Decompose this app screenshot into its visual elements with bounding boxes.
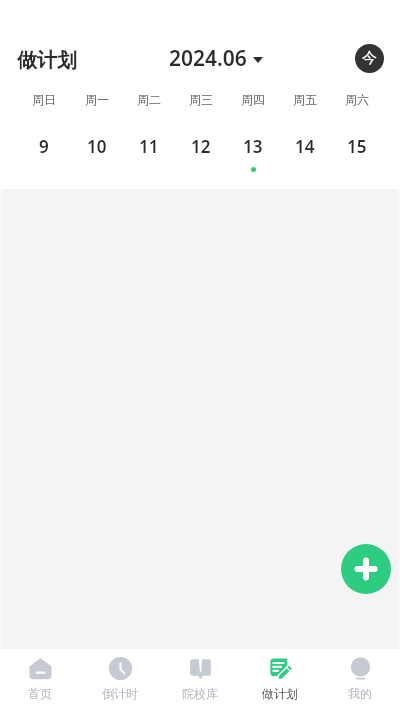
staticText: 院校库 — [182, 686, 218, 701]
staticText: 周一 — [85, 92, 109, 107]
button[interactable]: 15 — [331, 135, 383, 172]
button[interactable]: 做计划 — [17, 48, 77, 73]
staticText: 今 — [362, 49, 377, 68]
button[interactable]: Add plan — [341, 544, 391, 594]
staticText: 周三 — [189, 92, 213, 107]
staticText: 15 — [347, 135, 367, 158]
staticText: 周日 — [32, 92, 56, 107]
staticText: 10 — [87, 135, 107, 158]
button[interactable]: 做计划 — [240, 649, 320, 710]
staticText: 12 — [191, 135, 211, 158]
staticText: 倒计时 — [102, 686, 138, 701]
button[interactable]: 2024.06 — [169, 44, 263, 73]
staticText: 周二 — [137, 92, 161, 107]
button[interactable]: Today — [355, 44, 384, 73]
staticText: 做计划 — [262, 686, 298, 701]
button[interactable]: 10 — [70, 135, 123, 172]
staticText: 周五 — [293, 92, 317, 107]
staticText: 13 — [243, 135, 263, 158]
staticText: 2024.06 — [169, 44, 247, 73]
button[interactable]: 14 — [279, 135, 331, 172]
button[interactable]: 院校库 — [160, 649, 240, 710]
button[interactable]: 11 — [123, 135, 175, 172]
staticText: 周六 — [345, 92, 369, 107]
staticText: 9 — [39, 135, 49, 158]
staticText: 11 — [139, 135, 159, 158]
staticText: 首页 — [28, 686, 52, 701]
button[interactable]: 我的 — [320, 649, 400, 710]
staticText: 周四 — [241, 92, 265, 107]
staticText: 14 — [295, 135, 315, 158]
button[interactable]: 13 — [227, 135, 279, 172]
button[interactable]: 12 — [175, 135, 227, 172]
button[interactable]: 首页 — [0, 649, 80, 710]
staticText: 我的 — [348, 686, 372, 701]
button[interactable]: 9 — [17, 135, 70, 172]
button[interactable]: 倒计时 — [80, 649, 160, 710]
